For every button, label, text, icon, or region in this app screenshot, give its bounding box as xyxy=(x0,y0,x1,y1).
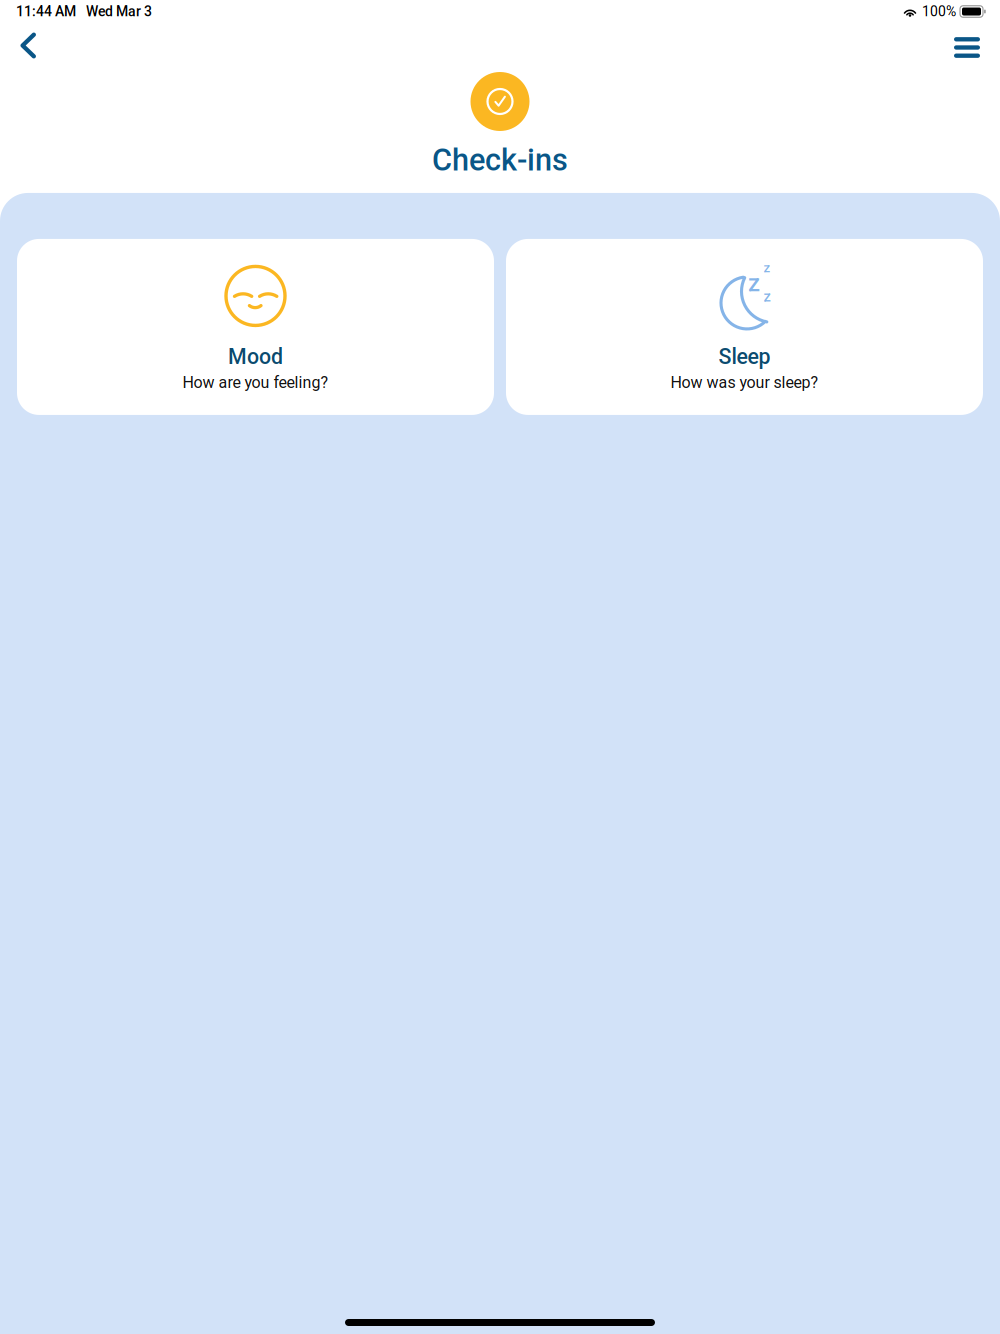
staticText: 11:44 AM xyxy=(16,3,76,20)
staticText: How are you feeling? xyxy=(182,373,328,392)
staticText: Check-ins xyxy=(432,142,568,178)
staticText: How was your sleep? xyxy=(670,373,818,392)
button[interactable]: Mood xyxy=(17,239,494,415)
button[interactable]: Back xyxy=(8,25,48,65)
button[interactable]: z xyxy=(506,239,983,415)
staticText: 100% xyxy=(922,3,956,20)
staticText: z xyxy=(763,260,770,275)
staticText: z xyxy=(748,269,760,297)
staticText: Mood xyxy=(228,344,283,369)
staticText: z xyxy=(763,288,770,305)
button[interactable]: Menu xyxy=(947,25,987,65)
staticText: Wed Mar 3 xyxy=(86,3,152,20)
staticText: Sleep xyxy=(718,344,770,369)
